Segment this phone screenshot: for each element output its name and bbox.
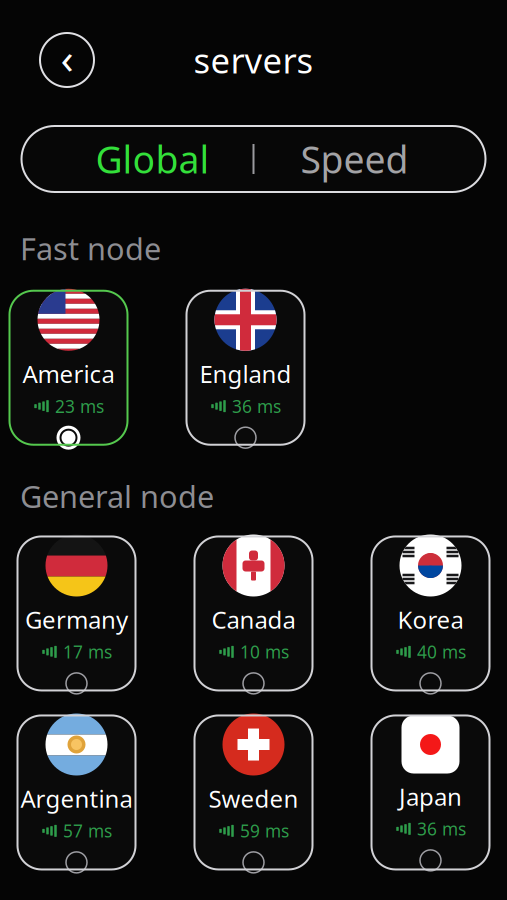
staticText: Fast node — [20, 228, 161, 269]
staticText: England — [199, 358, 291, 390]
staticText: 17 ms — [63, 640, 112, 663]
button[interactable]: Speed — [254, 127, 454, 191]
staticText: 36 ms — [232, 395, 281, 418]
button[interactable]: England — [186, 291, 304, 445]
staticText: Argentina — [20, 782, 132, 814]
staticText: 36 ms — [417, 817, 466, 840]
staticText: Speed — [300, 134, 408, 184]
button[interactable]: Back — [38, 31, 96, 89]
staticText: ‹ — [60, 29, 73, 86]
staticText: Global — [95, 134, 209, 184]
staticText: servers — [193, 37, 313, 83]
button[interactable]: Canada — [194, 536, 312, 690]
staticText: America — [22, 358, 114, 390]
staticText: Japan — [399, 780, 462, 812]
button[interactable]: Japan — [371, 715, 489, 869]
staticText: 40 ms — [417, 640, 466, 663]
staticText: 57 ms — [63, 819, 112, 842]
button[interactable]: Global — [52, 127, 252, 191]
staticText: General node — [20, 476, 214, 516]
staticText: Korea — [397, 603, 463, 635]
button[interactable]: America — [9, 291, 127, 445]
button[interactable]: Germany — [17, 536, 135, 690]
staticText: 59 ms — [240, 819, 289, 842]
staticText: 23 ms — [55, 395, 104, 418]
staticText: Germany — [25, 603, 128, 635]
staticText: Sweden — [208, 782, 298, 814]
button[interactable]: Argentina — [17, 715, 135, 869]
button[interactable]: Sweden — [194, 715, 312, 869]
staticText: Canada — [211, 603, 295, 635]
button[interactable]: Korea — [371, 536, 489, 690]
staticText: 10 ms — [240, 640, 289, 663]
